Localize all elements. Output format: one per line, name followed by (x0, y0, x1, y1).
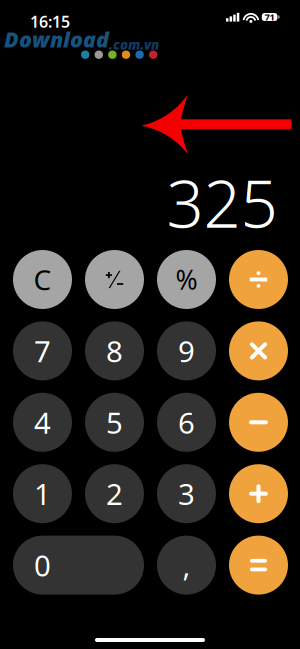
button[interactable]: , (157, 536, 216, 595)
button[interactable]: 4 (13, 393, 72, 452)
button[interactable]: % (157, 250, 216, 309)
button[interactable]: 7 (13, 321, 72, 380)
staticText: 1 (34, 474, 51, 513)
staticText: 7 (34, 331, 51, 370)
staticText: 0 (34, 546, 51, 585)
staticText: 3 (178, 474, 195, 513)
staticText: 4 (34, 403, 51, 442)
button[interactable]: Add (229, 464, 288, 523)
button[interactable]: 2 (85, 464, 144, 523)
staticText: 16:15 (30, 11, 70, 32)
button[interactable]: Divide (229, 250, 288, 309)
button[interactable]: 3 (157, 464, 216, 523)
staticText: 325 (166, 159, 277, 246)
button[interactable]: 6 (157, 393, 216, 452)
button[interactable]: Equals (229, 536, 288, 595)
button[interactable]: 0 (13, 536, 144, 595)
button[interactable]: C (13, 250, 72, 309)
staticText: 71 (265, 11, 275, 23)
staticText: % (175, 262, 197, 297)
button[interactable]: 5 (85, 393, 144, 452)
staticText: .com.vn (109, 36, 159, 53)
staticText: 6 (178, 403, 195, 442)
staticText: C (33, 261, 51, 298)
button[interactable]: 8 (85, 321, 144, 380)
staticText: 8 (106, 331, 123, 370)
button[interactable]: 9 (157, 321, 216, 380)
staticText: Download (4, 25, 109, 53)
button[interactable]: 1 (13, 464, 72, 523)
button[interactable]: Plus minus (85, 250, 144, 309)
staticText: 5 (106, 403, 123, 442)
staticText: , (182, 546, 190, 585)
staticText: 9 (178, 331, 195, 370)
staticText: 2 (106, 474, 123, 513)
button[interactable]: Multiply (229, 321, 288, 380)
button[interactable]: Subtract (229, 393, 288, 452)
